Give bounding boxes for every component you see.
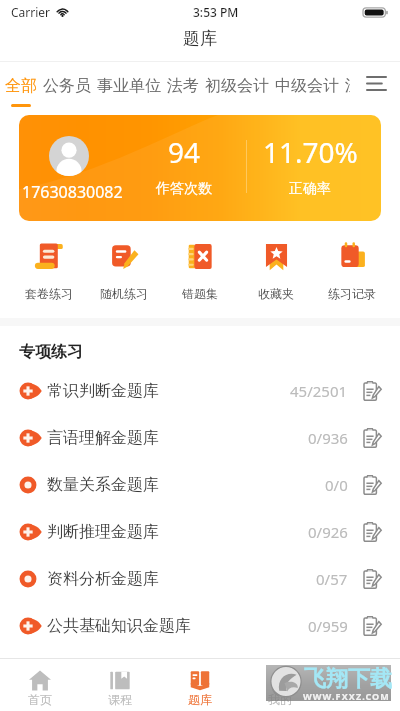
button[interactable]: 常识判断金题库 xyxy=(0,367,400,414)
staticText: 0/0 xyxy=(325,475,348,495)
staticText: 注 xyxy=(345,76,350,96)
staticText: 0/936 xyxy=(308,428,348,448)
button[interactable]: 练习记录 xyxy=(314,241,390,301)
button[interactable]: 收藏夹 xyxy=(238,241,314,301)
staticText: 数量关系金题库 xyxy=(47,475,159,495)
staticText: 法考 xyxy=(167,76,199,96)
button[interactable]: 我的 xyxy=(240,659,320,711)
button[interactable]: 资料分析金题库 xyxy=(0,555,400,602)
staticText: 题库 xyxy=(183,28,217,49)
staticText: 首页 xyxy=(28,692,52,707)
staticText: 套卷练习 xyxy=(25,286,73,301)
staticText: 题库 xyxy=(188,692,212,707)
staticText: 正确率 xyxy=(289,180,331,198)
button[interactable]: 判断推理金题库 xyxy=(0,508,400,555)
staticText: 课程 xyxy=(108,692,132,707)
staticText: 11.70% xyxy=(263,133,358,171)
staticText: 作答次数 xyxy=(156,180,212,198)
button[interactable]: 题库 xyxy=(160,659,240,711)
staticText: 常识判断金题库 xyxy=(47,381,159,401)
staticText: 收藏夹 xyxy=(258,286,294,301)
button[interactable]: 错题集 xyxy=(162,241,238,301)
staticText: Carrier xyxy=(11,4,51,20)
staticText: 飞翔下载 xyxy=(304,665,392,693)
staticText: 初级会计 xyxy=(205,76,269,96)
staticText: 专项练习 xyxy=(19,342,83,362)
staticText: WWW.FXXZ.COM xyxy=(303,690,390,702)
button[interactable]: 初级会计 xyxy=(202,62,272,104)
staticText: 判断推理金题库 xyxy=(47,522,159,542)
button[interactable]: 言语理解金题库 xyxy=(0,414,400,461)
button[interactable]: 事业单位 xyxy=(94,62,164,104)
staticText: 0/959 xyxy=(308,616,348,636)
button[interactable]: 数量关系金题库 xyxy=(0,461,400,508)
staticText: 公共基础知识金题库 xyxy=(47,616,191,636)
staticText: 言语理解金题库 xyxy=(47,428,159,448)
button[interactable]: 法考 xyxy=(164,62,202,104)
button[interactable]: 全部 xyxy=(2,62,40,107)
staticText: 45/2501 xyxy=(290,381,348,401)
staticText: 0/57 xyxy=(316,569,348,589)
staticText: 中级会计 xyxy=(275,76,339,96)
button[interactable]: 公共基础知识金题库 xyxy=(0,602,400,649)
button[interactable]: 17630830082 xyxy=(19,115,381,221)
button[interactable]: 公务员 xyxy=(40,62,94,104)
button[interactable]: 随机练习 xyxy=(86,241,162,301)
staticText: 随机练习 xyxy=(100,286,148,301)
staticText: 0/926 xyxy=(308,522,348,542)
button[interactable]: 注 xyxy=(342,62,353,104)
staticText: 公务员 xyxy=(43,76,91,96)
staticText: 我的 xyxy=(268,692,292,707)
button[interactable]: 课程 xyxy=(80,659,160,711)
button[interactable]: Menu xyxy=(353,62,400,110)
staticText: 94 xyxy=(168,133,201,171)
staticText: 17630830082 xyxy=(22,181,123,203)
button[interactable]: 套卷练习 xyxy=(11,241,86,301)
staticText: 资料分析金题库 xyxy=(47,569,159,589)
staticText: 练习记录 xyxy=(328,286,376,301)
button[interactable]: 中级会计 xyxy=(272,62,342,104)
button[interactable]: 首页 xyxy=(0,659,80,711)
staticText: 事业单位 xyxy=(97,76,161,96)
staticText: 3:53 PM xyxy=(193,4,239,20)
staticText: 全部 xyxy=(5,76,37,96)
staticText: 错题集 xyxy=(182,286,218,301)
